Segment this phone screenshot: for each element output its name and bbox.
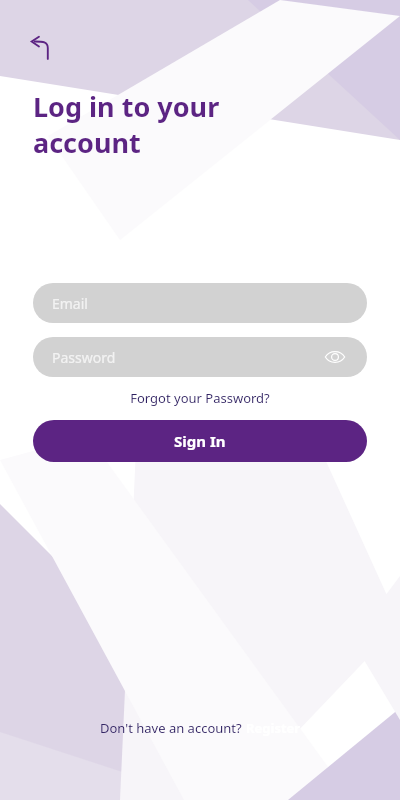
staticText: Sign In <box>174 431 226 451</box>
button[interactable]: Email <box>33 283 367 323</box>
button[interactable]: Forgot your Password? <box>33 386 367 410</box>
button[interactable]: Show password <box>322 344 348 370</box>
button[interactable]: Don't have an account? <box>92 716 309 740</box>
button[interactable]: Sign In <box>33 420 367 462</box>
staticText: Log in to your account <box>33 88 220 161</box>
staticText: Email <box>52 294 88 313</box>
button[interactable]: Back <box>20 28 60 68</box>
staticText: Don't have an account? <box>100 719 246 737</box>
staticText: Forgot your Password? <box>130 389 270 407</box>
staticText: Password <box>52 348 116 367</box>
button[interactable]: Password <box>33 337 367 377</box>
